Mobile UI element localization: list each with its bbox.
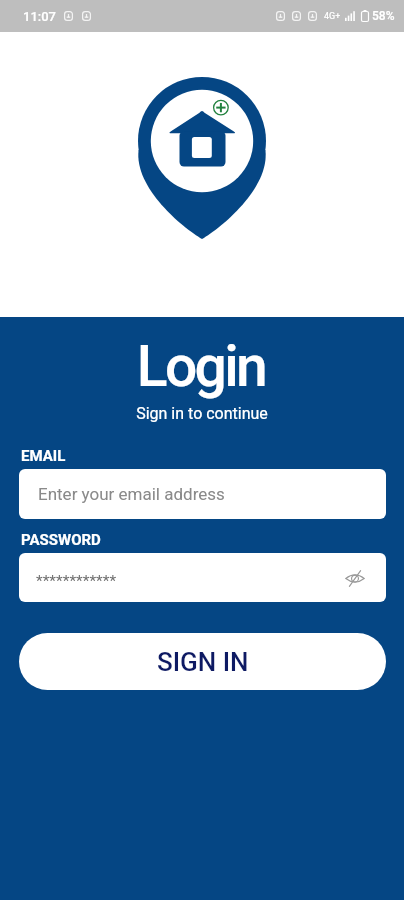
staticText: Enter your email address <box>38 484 225 504</box>
button[interactable]: Show password <box>340 563 370 593</box>
button[interactable]: SIGN IN <box>19 633 386 690</box>
staticText: Login <box>0 333 403 400</box>
button[interactable]: ************ <box>19 553 386 602</box>
button[interactable]: Enter your email address <box>19 469 386 519</box>
staticText: SIGN IN <box>157 647 249 677</box>
staticText: 11:07 <box>23 9 56 24</box>
staticText: 4G+ <box>324 11 341 22</box>
staticText: ************ <box>36 572 117 590</box>
staticText: 58% <box>372 9 395 23</box>
staticText: PASSWORD <box>21 531 101 549</box>
staticText: EMAIL <box>21 447 66 465</box>
staticText: Sign in to continue <box>0 404 404 423</box>
